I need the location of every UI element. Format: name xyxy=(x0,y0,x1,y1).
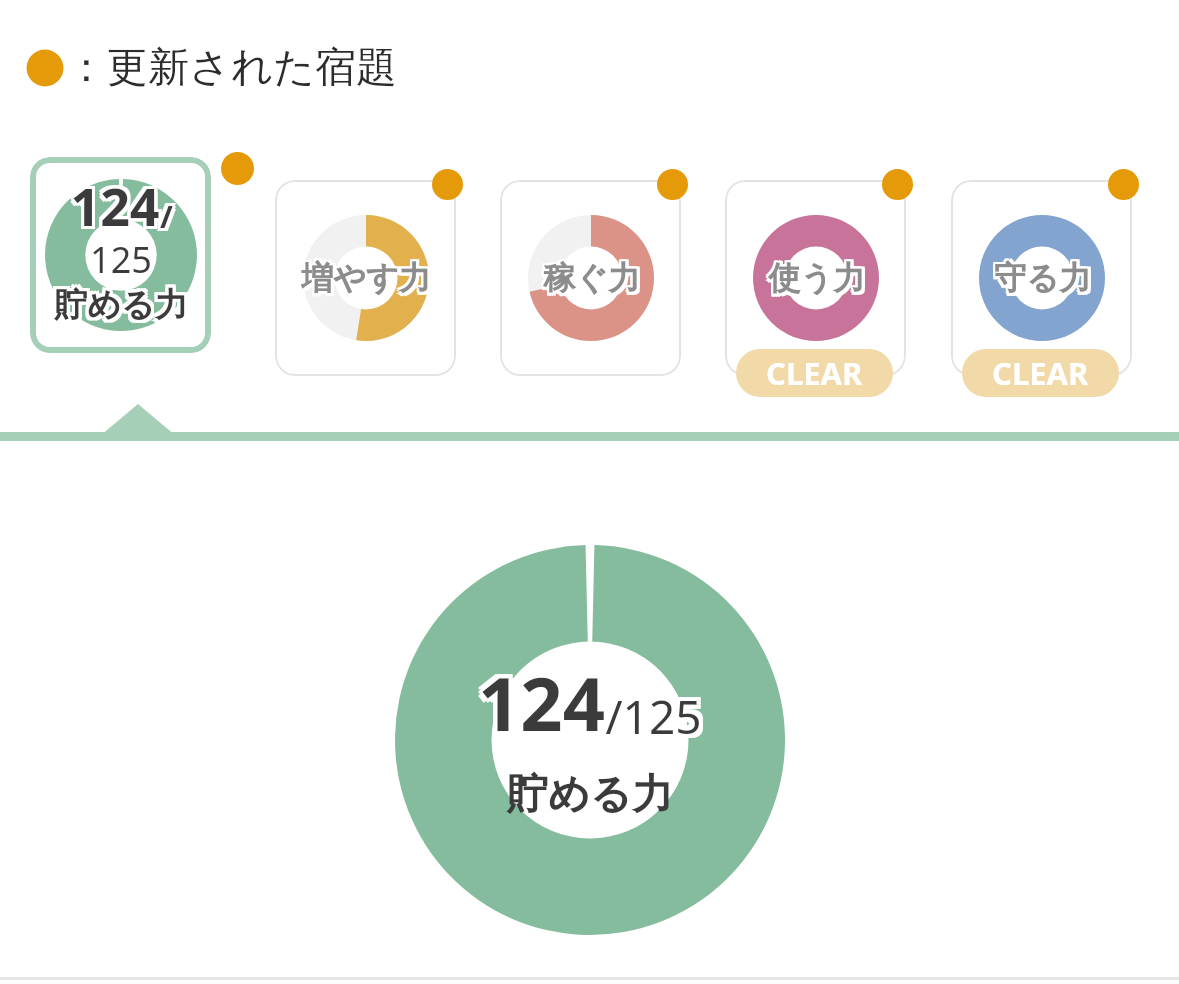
staticText: 124 xyxy=(474,652,601,753)
staticText: /125 xyxy=(601,689,698,752)
staticText: 124 xyxy=(474,648,601,749)
other: 更新された宿題 xyxy=(882,169,913,200)
staticText: 貯める力 xyxy=(57,284,191,326)
staticText: 125 xyxy=(87,235,149,284)
staticText: CLEAR xyxy=(766,352,863,394)
staticText: 124 xyxy=(474,656,601,757)
staticText: 使う力 xyxy=(768,261,865,301)
staticText: 増やす力 xyxy=(304,256,434,296)
staticText: /125 xyxy=(601,681,698,744)
staticText: 貯める力 xyxy=(54,287,188,329)
staticText: 124 xyxy=(478,656,605,757)
staticText: 稼ぐ力 xyxy=(546,261,643,301)
staticText: 124 xyxy=(70,167,160,238)
staticText: 増やす力 xyxy=(301,258,431,298)
staticText: 貯める力 xyxy=(51,284,185,326)
staticText: 使う力 xyxy=(771,261,868,301)
staticText: 124 xyxy=(67,173,157,244)
staticText: 稼ぐ力 xyxy=(543,261,640,301)
staticText: 増やす力 xyxy=(299,256,429,296)
staticText: 貯める力 xyxy=(507,769,673,821)
other: 更新された宿題 xyxy=(657,169,688,200)
staticText: 使う力 xyxy=(766,256,863,296)
staticText: 守る力 xyxy=(994,258,1091,298)
staticText: 124 xyxy=(482,652,609,753)
staticText: 124 xyxy=(478,648,605,749)
staticText: 124 xyxy=(73,170,163,241)
other: 更新された宿題 xyxy=(432,169,463,200)
staticText: 125 xyxy=(93,235,155,284)
other: 更新された宿題 xyxy=(221,152,254,185)
staticText: /125 xyxy=(601,685,698,748)
staticText: /125 xyxy=(609,685,706,748)
staticText: 守る力 xyxy=(997,256,1094,296)
button[interactable]: 使う力 xyxy=(725,180,906,376)
staticText: 稼ぐ力 xyxy=(543,258,640,298)
staticText: /125 xyxy=(605,681,702,744)
staticText: 増やす力 xyxy=(304,258,434,298)
staticText: 守る力 xyxy=(997,261,1094,301)
staticText: 増やす力 xyxy=(299,258,429,298)
staticText: 増やす力 xyxy=(299,261,429,301)
staticText: / xyxy=(157,195,170,237)
button[interactable]: 守る力 xyxy=(951,180,1132,376)
staticText: /125 xyxy=(609,689,706,752)
button[interactable]: CLEAR xyxy=(962,349,1119,397)
staticText: 守る力 xyxy=(992,258,1089,298)
staticText: 使う力 xyxy=(766,258,863,298)
staticText: 125 xyxy=(90,238,152,287)
staticText: 貯める力 xyxy=(54,284,188,326)
staticText: /125 xyxy=(605,685,702,748)
button[interactable]: CLEAR xyxy=(736,349,893,397)
staticText: / xyxy=(163,195,176,237)
staticText: 125 xyxy=(90,232,152,281)
staticText: 使う力 xyxy=(768,258,865,298)
other: 更新された宿題 xyxy=(1108,169,1139,200)
staticText: / xyxy=(163,198,176,240)
staticText: 124 xyxy=(482,648,609,749)
staticText: 125 xyxy=(93,238,155,287)
staticText: 124 xyxy=(73,167,163,238)
staticText: 124 xyxy=(70,173,160,244)
staticText: 124 xyxy=(73,173,163,244)
staticText: 守る力 xyxy=(992,261,1089,301)
staticText: 稼ぐ力 xyxy=(546,258,643,298)
staticText: / xyxy=(160,192,173,234)
staticText: 使う力 xyxy=(771,258,868,298)
staticText: / xyxy=(157,192,170,234)
staticText: 稼ぐ力 xyxy=(541,256,638,296)
staticText: 125 xyxy=(87,238,149,287)
staticText: /125 xyxy=(609,681,706,744)
staticText: 増やす力 xyxy=(301,261,431,301)
button[interactable]: 増やす力 xyxy=(275,180,456,376)
staticText: 使う力 xyxy=(768,256,865,296)
staticText: 貯める力 xyxy=(54,281,188,323)
staticText: 125 xyxy=(93,232,155,281)
staticText: ：更新された宿題 xyxy=(66,42,397,94)
staticText: 124 xyxy=(478,652,605,753)
staticText: 守る力 xyxy=(997,258,1094,298)
button[interactable]: 稼ぐ力 xyxy=(500,180,681,376)
button[interactable]: 貯める力 xyxy=(30,157,211,353)
staticText: 増やす力 xyxy=(304,261,434,301)
staticText: 貯める力 xyxy=(57,281,191,323)
staticText: 貯める力 xyxy=(51,281,185,323)
staticText: 守る力 xyxy=(994,261,1091,301)
staticText: / xyxy=(160,198,173,240)
staticText: / xyxy=(157,198,170,240)
staticText: 124 xyxy=(482,656,609,757)
staticText: / xyxy=(163,192,176,234)
staticText: 稼ぐ力 xyxy=(541,258,638,298)
staticText: 124 xyxy=(70,170,160,241)
staticText: 稼ぐ力 xyxy=(543,256,640,296)
staticText: 守る力 xyxy=(992,256,1089,296)
staticText: 稼ぐ力 xyxy=(546,256,643,296)
staticText: 124 xyxy=(67,167,157,238)
staticText: / xyxy=(160,195,173,237)
staticText: /125 xyxy=(605,689,702,752)
staticText: 使う力 xyxy=(766,261,863,301)
staticText: 守る力 xyxy=(994,256,1091,296)
staticText: 貯める力 xyxy=(57,287,191,329)
staticText: 使う力 xyxy=(771,256,868,296)
staticText: 125 xyxy=(87,232,149,281)
